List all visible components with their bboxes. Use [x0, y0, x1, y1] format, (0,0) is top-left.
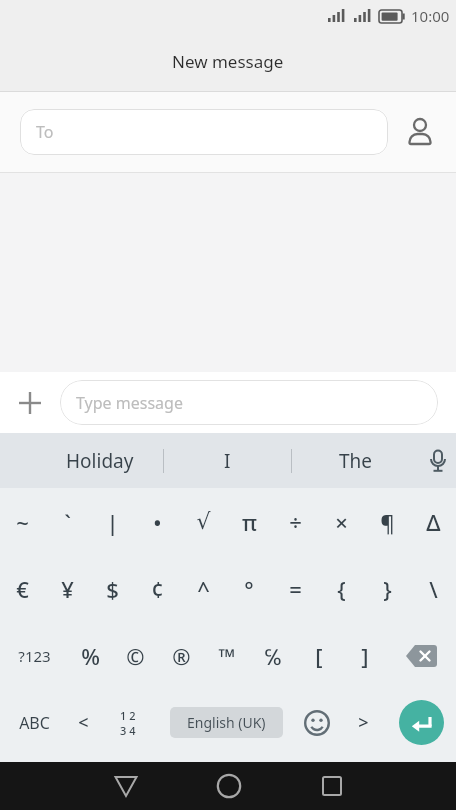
button[interactable]: ^	[180, 555, 226, 622]
button[interactable]: %	[68, 622, 113, 689]
staticText: The	[339, 448, 373, 474]
button[interactable]	[74, 762, 177, 810]
button[interactable]: ?123	[0, 622, 68, 689]
button[interactable]: Δ	[410, 488, 456, 555]
button[interactable]: √	[180, 488, 226, 555]
button[interactable]: ™	[204, 622, 250, 689]
staticText: [	[315, 641, 323, 671]
button[interactable]: €	[0, 555, 45, 622]
staticText: ¥	[61, 574, 74, 604]
button[interactable]: Holiday	[36, 433, 163, 488]
staticText: `	[64, 507, 71, 537]
button[interactable]	[177, 762, 280, 810]
button[interactable]	[280, 762, 383, 810]
button[interactable]: To	[20, 109, 388, 155]
staticText: ABC	[19, 712, 50, 734]
staticText: ×	[335, 507, 348, 537]
staticText: ~	[16, 507, 29, 537]
staticText: 3 4	[120, 723, 136, 738]
button[interactable]: •	[135, 488, 180, 555]
button[interactable]: ¢	[135, 555, 180, 622]
button[interactable]: }	[364, 555, 410, 622]
staticText: °	[244, 574, 254, 604]
staticText: %	[81, 641, 100, 671]
staticText: ®	[172, 641, 191, 671]
staticText: ™	[218, 641, 236, 671]
staticText: I	[224, 448, 231, 474]
staticText: 1 2	[120, 708, 136, 723]
button[interactable]: ~	[0, 488, 45, 555]
staticText: ^	[197, 574, 210, 604]
button[interactable]	[294, 689, 340, 756]
button[interactable]	[0, 372, 60, 433]
button[interactable]: ¶	[364, 488, 410, 555]
button[interactable]: ABC	[0, 689, 68, 756]
button[interactable]: `	[45, 488, 90, 555]
staticText: ℅	[264, 641, 282, 671]
button[interactable]: English (UK)	[170, 707, 283, 738]
button[interactable]: \	[410, 555, 456, 622]
staticText: ]	[361, 641, 369, 671]
staticText: }	[383, 574, 392, 604]
staticText: ¢	[151, 574, 164, 604]
staticText: Δ	[426, 507, 441, 537]
staticText: ¶	[380, 507, 395, 537]
staticText: Holiday	[66, 448, 134, 474]
button[interactable]: [	[296, 622, 342, 689]
button[interactable]: ×	[318, 488, 364, 555]
button[interactable]: I	[164, 433, 291, 488]
button[interactable]	[419, 433, 456, 488]
staticText: €	[16, 574, 29, 604]
staticText: ÷	[289, 507, 302, 537]
button[interactable]: 1 2	[98, 689, 158, 756]
staticText: $	[106, 574, 119, 604]
button[interactable]: Type message	[60, 380, 438, 425]
staticText: English (UK)	[187, 713, 266, 732]
staticText: |	[106, 507, 119, 537]
staticText: ©	[126, 641, 145, 671]
button[interactable]: π	[226, 488, 272, 555]
button[interactable]: ¥	[45, 555, 90, 622]
button[interactable]: $	[90, 555, 135, 622]
staticText: {	[337, 574, 346, 604]
button[interactable]	[388, 622, 456, 689]
staticText: √	[196, 509, 211, 535]
button[interactable]: ]	[342, 622, 388, 689]
button[interactable]: |	[90, 488, 135, 555]
button[interactable]: ℅	[250, 622, 296, 689]
staticText: New message	[172, 50, 284, 73]
button[interactable]: {	[318, 555, 364, 622]
staticText: ?123	[18, 646, 51, 666]
staticText: π	[242, 507, 257, 537]
staticText: >	[358, 710, 369, 735]
button[interactable]: °	[226, 555, 272, 622]
staticText: <	[78, 710, 89, 735]
button[interactable]	[388, 104, 452, 160]
button[interactable]: <	[68, 689, 98, 756]
button[interactable]: The	[292, 433, 419, 488]
staticText: \	[429, 574, 438, 604]
staticText: 10:00	[411, 6, 450, 26]
staticText: To	[36, 121, 54, 143]
button[interactable]: >	[340, 689, 386, 756]
staticText: •	[153, 507, 162, 537]
button[interactable]: ©	[113, 622, 158, 689]
button[interactable]: ®	[158, 622, 204, 689]
button[interactable]: =	[272, 555, 318, 622]
button[interactable]	[399, 700, 444, 745]
button[interactable]: ÷	[272, 488, 318, 555]
staticText: =	[289, 574, 302, 604]
staticText: Type message	[76, 392, 183, 414]
